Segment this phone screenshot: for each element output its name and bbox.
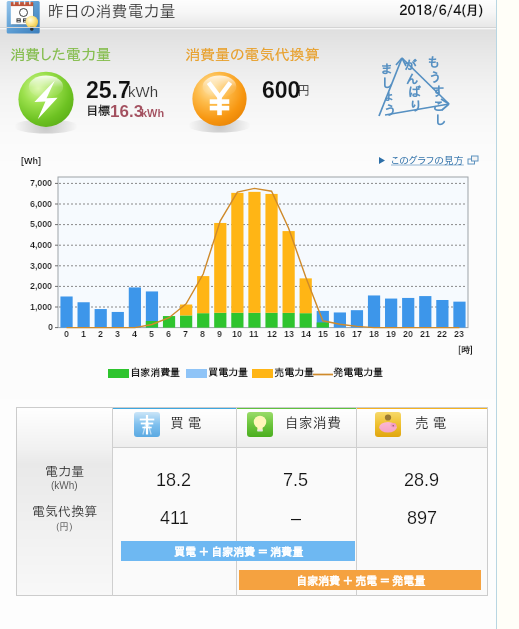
staticText: 消費した電力量 [10,47,111,62]
staticText: 発電電力量 [333,367,383,377]
staticText: 411 [160,508,189,528]
staticText: 3,000 [30,261,53,271]
staticText: ょ [384,90,393,103]
staticText: 2 [98,329,104,339]
staticText: が [404,59,417,72]
staticText: 13 [284,329,295,339]
staticText: 5,000 [30,219,53,229]
staticText: kWh [141,107,165,119]
staticText: ま [381,63,392,76]
staticText: も [428,56,439,69]
button[interactable]: 買 電 [112,407,236,447]
staticText: 買電 ＋ 自家消費 ＝ 消費量 [174,546,303,557]
staticText: う [385,104,395,117]
staticText: 自家消費量 [130,367,180,377]
staticText: 電気代換算 [32,505,97,518]
staticText: [時] [458,345,473,354]
staticText: 1 [81,329,87,339]
staticText: 18.2 [156,470,192,490]
staticText: う [430,71,440,84]
staticText: 16.3 [110,102,144,121]
staticText: 7.5 [283,470,309,490]
button[interactable]: 売 電 [356,407,488,447]
staticText: 11 [249,329,259,339]
staticText: [Wh] [21,156,41,166]
button[interactable]: 自家消費 [236,407,356,447]
staticText: 23 [454,329,465,339]
staticText: 12 [267,329,278,339]
staticText: 2018/6/4(月) [399,4,483,17]
staticText: 7,000 [30,178,53,188]
staticText: 22 [437,329,448,339]
staticText: し [435,114,446,127]
button[interactable]: このグラフの見方 [379,155,478,165]
staticText: 自家消費 ＋ 売電 ＝ 発電量 [296,575,425,586]
staticText: す [432,85,444,98]
staticText: 6,000 [30,199,53,209]
staticText: 0 [48,322,53,332]
staticText: 16 [335,329,346,339]
staticText: ば [408,86,421,99]
staticText: 0 [64,329,70,339]
staticText: 売 電 [415,416,447,430]
staticText: 昨日の消費電力量 [48,3,176,19]
staticText: kWh [128,83,158,100]
staticText: 25.7 [86,77,131,103]
staticText: 2,000 [30,281,53,291]
staticText: 自家消費 [285,416,341,430]
staticText: 消費量の電気代換算 [185,47,320,62]
staticText: (kWh) [51,480,78,491]
staticText: 買 電 [170,416,202,430]
staticText: 売電力量 [274,367,314,377]
staticText: 目標 [86,104,110,116]
staticText: 8 [200,329,206,339]
staticText: 4,000 [30,240,53,250]
staticText: 電力量 [45,465,84,478]
staticText: 897 [407,508,438,528]
staticText: 10 [232,329,243,339]
other: このグラフの見方 [468,156,478,165]
staticText: こ [433,100,444,113]
staticText: 14 [301,329,312,339]
staticText: 5 [149,329,155,339]
staticText: 15 [318,329,329,339]
staticText: 7 [183,329,189,339]
staticText: 17 [352,329,363,339]
staticText: 円 [297,84,310,97]
staticText: – [291,508,302,528]
staticText: 買電力量 [208,367,248,377]
staticText: 19 [386,329,397,339]
staticText: 3 [115,329,121,339]
staticText: 1,000 [30,302,53,312]
staticText: 4 [132,329,138,339]
staticText: 18 [369,329,380,339]
staticText: このグラフの見方 [391,155,464,165]
staticText: (円) [56,521,73,531]
staticText: 6 [166,329,172,339]
staticText: 21 [420,329,431,339]
staticText: し [382,77,393,90]
staticText: 600 [262,77,301,103]
staticText: ん [406,73,418,86]
staticText: 20 [403,329,414,339]
staticText: 9 [217,329,223,339]
staticText: 28.9 [404,470,440,490]
staticText: り [410,100,421,113]
